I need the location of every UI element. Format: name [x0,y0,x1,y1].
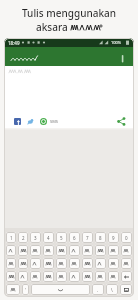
button[interactable] [108,258,119,269]
button[interactable] [120,284,132,295]
button[interactable] [18,271,28,282]
button[interactable] [43,271,54,282]
button[interactable] [6,245,16,256]
staticText: 6 [73,235,76,241]
button[interactable]: 1 [6,232,16,243]
button[interactable] [40,118,47,125]
staticText: 7 [86,235,89,241]
button[interactable]: 9 [108,232,119,243]
button[interactable] [69,245,80,256]
button[interactable] [6,258,16,269]
button[interactable] [56,271,67,282]
staticText: SMS [50,119,59,124]
staticText: 9 [112,235,115,241]
staticText: aksara [36,20,71,34]
button[interactable]: ' [22,284,29,295]
button[interactable]: 5 [56,232,67,243]
button[interactable]: . [92,284,104,295]
staticText: ' [25,287,27,293]
button[interactable]: 8 [95,232,106,243]
button[interactable] [14,118,21,125]
button[interactable] [6,271,16,282]
button[interactable] [56,245,67,256]
button[interactable]: SMS [50,119,59,124]
button[interactable] [4,47,134,66]
button[interactable] [121,258,132,269]
button[interactable] [95,271,106,282]
staticText: 100% [111,40,122,45]
button[interactable] [69,271,80,282]
button[interactable]: 2 [18,232,28,243]
staticText: . [97,287,99,293]
button[interactable] [43,258,54,269]
button[interactable] [18,245,28,256]
button[interactable] [43,245,54,256]
staticText: 18:49 [8,40,20,46]
button[interactable] [69,258,80,269]
staticText: 1 [10,235,13,241]
button[interactable] [95,245,106,256]
button[interactable] [121,271,132,282]
button[interactable] [18,258,28,269]
button[interactable] [82,271,93,282]
button[interactable] [95,258,106,269]
button[interactable]: \ [106,284,118,295]
staticText: \ [111,287,113,293]
button[interactable] [108,271,119,282]
button[interactable] [108,245,119,256]
button[interactable]: 6 [69,232,80,243]
button[interactable]: 7 [82,232,93,243]
button[interactable] [82,245,93,256]
staticText: 8 [99,235,102,241]
staticText: 3 [34,235,37,241]
button[interactable] [30,271,41,282]
button[interactable] [82,258,93,269]
button[interactable] [27,118,34,125]
button[interactable] [121,245,132,256]
staticText: 0 [125,235,128,241]
button[interactable]: 4 [43,232,54,243]
staticText: Tulis menggunakan [22,6,116,20]
button[interactable] [30,258,41,269]
button[interactable] [56,258,67,269]
staticText: 5 [60,235,63,241]
button[interactable]: 0 [121,232,132,243]
button[interactable]: 3 [30,232,41,243]
staticText: 4 [47,235,50,241]
button[interactable] [6,284,20,295]
button[interactable] [31,284,90,295]
staticText: 2 [22,235,25,241]
button[interactable] [117,117,126,126]
button[interactable] [30,245,41,256]
